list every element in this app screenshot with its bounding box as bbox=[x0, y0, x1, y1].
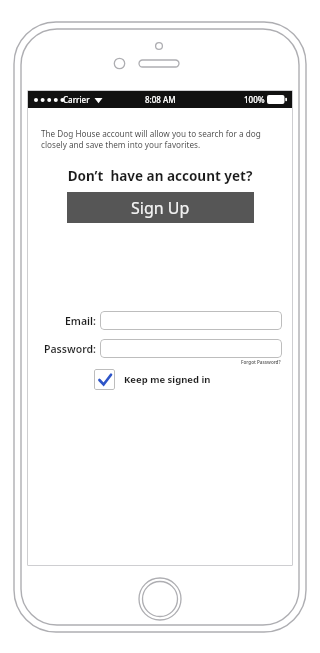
button[interactable] bbox=[100, 311, 282, 330]
staticText: Keep me signed in bbox=[124, 373, 211, 386]
staticText: Password: bbox=[44, 342, 96, 356]
button[interactable] bbox=[100, 339, 282, 358]
button[interactable]: Forgot Password? bbox=[241, 359, 281, 365]
staticText: 8:08 AM bbox=[145, 94, 176, 105]
staticText: The Dog House account will allow you to … bbox=[41, 128, 279, 150]
staticText: Don’t have an account yet? bbox=[28, 167, 292, 185]
staticText: 100% bbox=[244, 94, 265, 105]
button[interactable]: Sign Up bbox=[67, 192, 254, 223]
button[interactable]: Keep me signed in bbox=[94, 369, 211, 390]
staticText: Email: bbox=[65, 314, 96, 328]
staticText: Sign Up bbox=[131, 197, 190, 219]
staticText: Carrier bbox=[63, 94, 90, 105]
